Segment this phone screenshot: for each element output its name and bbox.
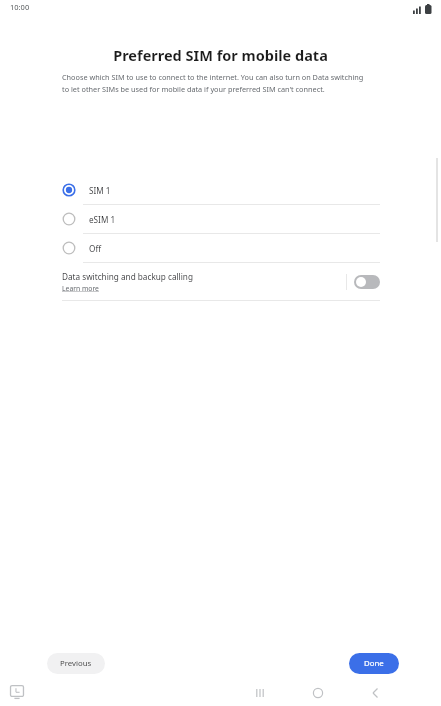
staticText: eSIM 1 bbox=[89, 214, 116, 225]
staticText: Choose which SIM to use to connect to th… bbox=[62, 72, 365, 94]
button[interactable]: Off bbox=[0, 234, 441, 262]
staticText: Data switching and backup calling bbox=[62, 271, 193, 282]
button[interactable]: Home bbox=[308, 683, 328, 703]
button[interactable]: SIM 1 bbox=[0, 176, 441, 204]
button[interactable]: Recent apps bbox=[250, 683, 270, 703]
staticText: Off bbox=[89, 243, 102, 254]
button[interactable]: Data switching and backup calling bbox=[62, 271, 346, 293]
staticText: SIM 1 bbox=[89, 185, 111, 196]
button[interactable]: eSIM 1 bbox=[0, 205, 441, 233]
staticText: 10:00 bbox=[10, 2, 30, 12]
button[interactable]: Display mode bbox=[8, 683, 26, 701]
staticText: Preferred SIM for mobile data bbox=[0, 45, 441, 65]
button[interactable]: Back bbox=[366, 683, 386, 703]
staticText: Previous bbox=[60, 658, 92, 669]
staticText: Learn more bbox=[62, 284, 99, 293]
staticText: Done bbox=[364, 658, 384, 669]
button[interactable]: Done bbox=[349, 653, 399, 674]
button[interactable]: Previous bbox=[47, 653, 105, 674]
button[interactable]: Data switching toggle bbox=[354, 275, 380, 289]
